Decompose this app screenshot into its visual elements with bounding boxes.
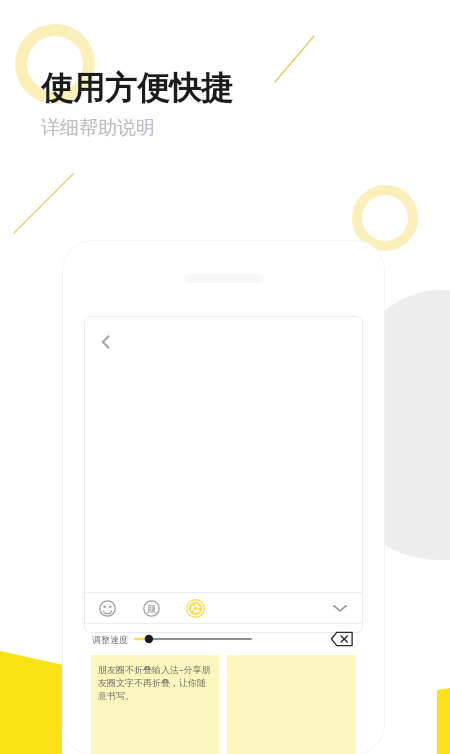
button[interactable]: Font style [138,595,164,621]
button[interactable]: 朋友圈不折叠输入法–分享朋友圈文字不再折叠，让你随意书写。 [91,655,219,754]
button[interactable]: Effects [182,595,208,621]
staticText: 朋友圈不折叠输入法–分享朋友圈文字不再折叠，让你随意书写。 [98,663,214,701]
staticText: 详细帮助说明 [41,116,155,140]
staticText: 调整速度 [92,634,128,645]
staticText: 使用方便快捷 [41,68,233,108]
button[interactable]: Collapse [325,593,355,623]
button[interactable]: Backspace [327,624,357,654]
staticText: 颜 [147,603,156,614]
button[interactable]: Emoji [94,595,120,621]
button[interactable]: Speed slider [135,631,251,647]
button[interactable]: Back [90,326,122,358]
